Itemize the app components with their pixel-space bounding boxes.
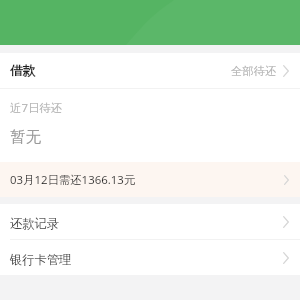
button[interactable]: 还款记录 (0, 204, 300, 239)
staticText: 还款记录 (10, 216, 60, 231)
staticText: 暂无 (10, 127, 41, 147)
button[interactable]: 借款 (0, 53, 300, 88)
staticText: 近7日待还 (10, 100, 63, 116)
staticText: 全部待还 (231, 64, 277, 78)
button[interactable]: 03月12日需还1366.13元 (0, 162, 300, 197)
button[interactable]: 银行卡管理 (0, 240, 300, 275)
staticText: 银行卡管理 (10, 252, 72, 267)
staticText: 借款 (10, 63, 36, 79)
staticText: 03月12日需还1366.13元 (10, 172, 136, 188)
